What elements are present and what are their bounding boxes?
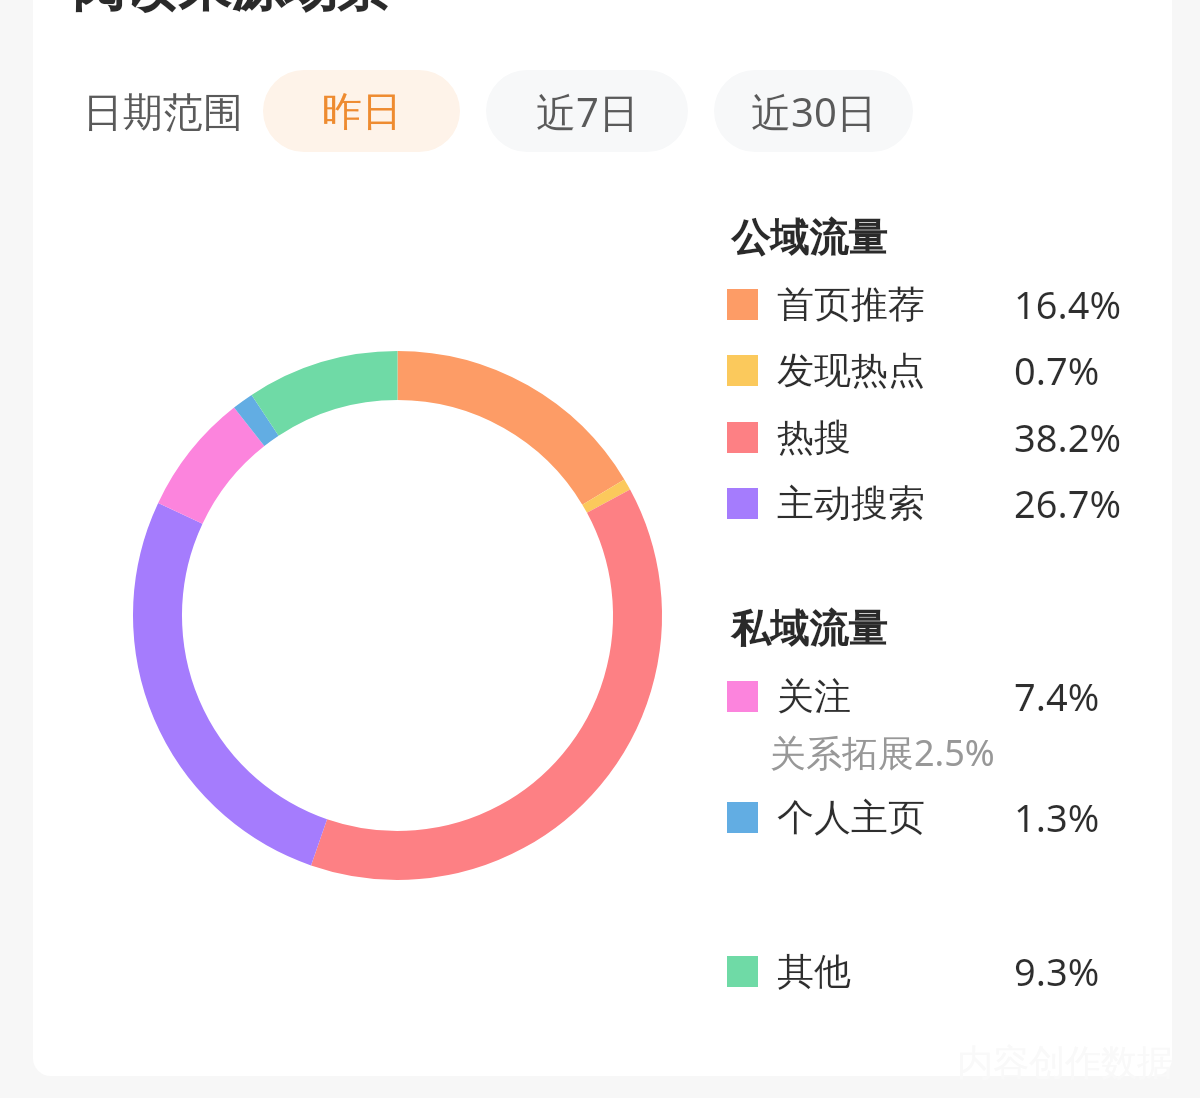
staticText: 关注 [777, 673, 851, 720]
staticText: 其他 [777, 948, 851, 995]
button[interactable]: 近7日 [486, 70, 688, 152]
staticText: 关系拓展2.5% [770, 728, 995, 777]
staticText: 7.4% [1014, 670, 1100, 722]
staticText: 近30日 [751, 84, 877, 139]
button[interactable]: 阅读来源场景占比环形图 [133, 351, 662, 880]
staticText: 主动搜索 [777, 480, 925, 527]
staticText: 26.7% [1014, 477, 1121, 529]
staticText: 16.4% [1014, 278, 1121, 330]
staticText: 9.3% [1014, 945, 1100, 997]
staticText: 昨日 [322, 86, 402, 136]
button[interactable]: 热搜 [727, 405, 1127, 469]
button[interactable]: 近30日 [714, 70, 913, 152]
staticText: 0.7% [1014, 344, 1100, 396]
staticText: 38.2% [1014, 411, 1121, 463]
button[interactable]: 首页推荐 [727, 272, 1127, 336]
staticText: 首页推荐 [777, 281, 925, 328]
staticText: 内容创作数据 [957, 1040, 1173, 1085]
button[interactable]: 其他 [727, 939, 1127, 1003]
staticText: 阅读来源场景 [72, 0, 390, 21]
staticText: 发现热点 [777, 347, 925, 394]
button[interactable]: 个人主页 [727, 785, 1127, 849]
staticText: 公域流量 [731, 213, 887, 262]
button[interactable]: 昨日 [263, 70, 460, 152]
staticText: 1.3% [1014, 791, 1100, 843]
staticText: 近7日 [536, 84, 639, 139]
button[interactable]: 发现热点 [727, 338, 1127, 402]
staticText: 个人主页 [777, 794, 925, 841]
staticText: 热搜 [777, 414, 851, 461]
staticText: 私域流量 [731, 604, 887, 653]
staticText: 日期范围 [83, 87, 243, 137]
button[interactable]: 关注 [727, 664, 1127, 728]
button[interactable]: 主动搜索 [727, 471, 1127, 535]
